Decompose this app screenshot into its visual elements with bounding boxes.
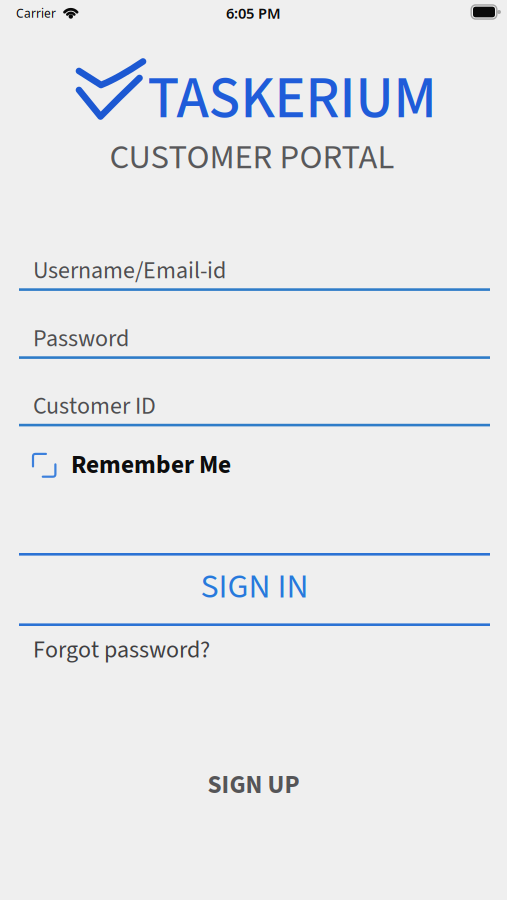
staticText: SIGN IN [200, 563, 308, 611]
staticText: 6:05 PM [226, 3, 281, 23]
button[interactable]: SIGN UP [173, 763, 333, 807]
staticText: CUSTOMER PORTAL [109, 133, 394, 182]
staticText: Username/Email-id [33, 254, 226, 288]
staticText: Remember Me [71, 447, 231, 483]
staticText: Customer ID [33, 389, 156, 423]
button[interactable]: Password [19, 322, 490, 359]
staticText: Carrier [16, 5, 56, 21]
staticText: Password [33, 322, 129, 356]
button[interactable]: SIGN IN [19, 553, 490, 626]
button[interactable]: Remember Me [19, 443, 490, 487]
staticText: TASKERIUM [147, 57, 436, 141]
button[interactable]: Username/Email-id [19, 254, 490, 291]
staticText: SIGN UP [207, 767, 299, 803]
button[interactable]: Customer ID [19, 389, 490, 426]
staticText: Forgot password? [33, 633, 210, 667]
button[interactable]: Forgot password? [33, 630, 253, 670]
